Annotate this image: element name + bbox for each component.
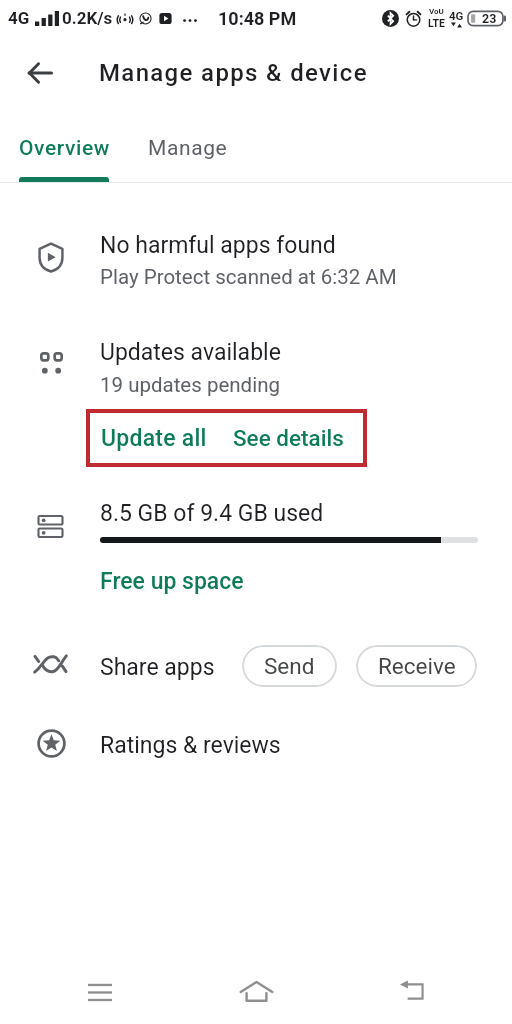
- staticText: 8.5 GB of 9.4 GB used: [100, 500, 324, 527]
- staticText: VoU: [429, 7, 444, 16]
- staticText: 19 updates pending: [100, 373, 280, 397]
- staticText: Send: [264, 653, 315, 679]
- staticText: Play Protect scanned at 6:32 AM: [100, 265, 397, 289]
- staticText: 0.2K/s: [62, 8, 113, 28]
- staticText: 10:48 PM: [218, 8, 297, 29]
- button[interactable]: Send: [242, 645, 337, 687]
- button[interactable]: Free up space: [100, 568, 244, 595]
- staticText: Free up space: [100, 568, 244, 595]
- button[interactable]: Receive: [356, 645, 477, 687]
- staticText: Receive: [378, 653, 456, 679]
- staticText: 4G: [449, 9, 464, 22]
- button[interactable]: Update all: [101, 425, 207, 452]
- staticText: Ratings & reviews: [100, 732, 281, 759]
- staticText: 4G: [8, 8, 30, 28]
- staticText: Update all: [101, 425, 207, 452]
- button[interactable]: Back: [16, 49, 64, 97]
- button[interactable]: Overview: [0, 119, 129, 177]
- button[interactable]: Manage: [123, 119, 252, 177]
- staticText: No harmful apps found: [100, 232, 336, 259]
- staticText: Manage: [148, 136, 228, 161]
- staticText: 23: [482, 11, 497, 26]
- button[interactable]: See details: [233, 425, 344, 451]
- staticText: See details: [233, 425, 344, 451]
- staticText: Updates available: [100, 339, 281, 366]
- staticText: LTE: [428, 17, 445, 29]
- button[interactable]: Menu: [56, 958, 144, 1024]
- staticText: Share apps: [100, 654, 215, 681]
- staticText: Manage apps & device: [99, 59, 368, 87]
- staticText: Overview: [19, 136, 111, 161]
- button[interactable]: Home: [212, 958, 300, 1024]
- button[interactable]: Back: [368, 958, 456, 1024]
